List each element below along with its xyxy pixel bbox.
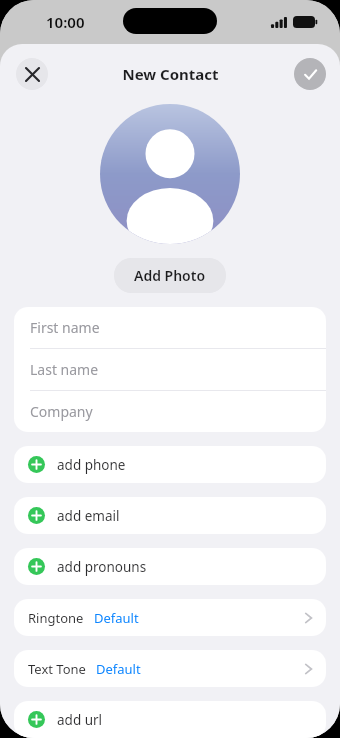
staticText: add phone [57,456,126,474]
button[interactable]: Add Photo [114,258,226,293]
staticText: New Contact [122,64,219,84]
button[interactable]: Company [14,391,326,432]
staticText: Last name [30,360,99,379]
staticText: Text Tone [28,660,86,678]
button[interactable]: Contact photo [100,104,240,244]
staticText: add url [57,711,103,729]
button[interactable]: Done [294,58,326,90]
button[interactable]: Cancel [16,58,48,90]
staticText: Company [30,402,93,421]
staticText: Default [96,660,141,678]
button[interactable]: add email [14,497,326,534]
button[interactable]: First name [14,307,326,348]
staticText: Add Photo [134,266,206,285]
button[interactable]: add url [14,701,326,738]
staticText: add email [57,507,120,525]
button[interactable]: Last name [14,349,326,390]
button[interactable]: add pronouns [14,548,326,585]
staticText: Ringtone [28,609,84,627]
staticText: First name [30,318,100,337]
button[interactable]: Text Tone [14,650,326,687]
staticText: Default [94,609,139,627]
staticText: add pronouns [57,558,147,576]
button[interactable]: add phone [14,446,326,483]
staticText: 10:00 [46,12,85,32]
button[interactable]: Ringtone [14,599,326,636]
